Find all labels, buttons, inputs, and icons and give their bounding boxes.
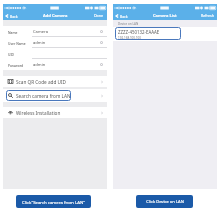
button[interactable]: Click"Search camera from LAN"	[16, 195, 91, 208]
staticText: Search camera from LAN	[16, 93, 71, 99]
button[interactable]: Click Device on LAN	[136, 195, 193, 208]
button[interactable]: Scan QR Code add UID	[3, 76, 107, 87]
staticText: Back	[10, 14, 18, 19]
other: Back	[115, 13, 119, 19]
other: Clear	[100, 41, 103, 44]
staticText: Camera List	[153, 13, 177, 19]
staticText: Camera	[33, 29, 48, 35]
other: Clear	[100, 63, 103, 66]
button[interactable]: ZZZZ-450132-EAAAE	[113, 27, 217, 41]
staticText: Click Device on LAN	[146, 199, 184, 205]
staticText: User Name	[8, 41, 26, 45]
button[interactable]: Refresh	[201, 13, 214, 18]
button[interactable]: Wireless Installation	[3, 107, 107, 118]
staticText: Click"Search camera from LAN"	[22, 199, 85, 205]
button[interactable]: Search camera from LAN	[3, 89, 107, 102]
staticText: 192.168.100.100	[118, 36, 142, 40]
staticText: Add Camera	[43, 13, 68, 19]
button[interactable]: Back	[115, 13, 128, 19]
staticText: UID	[8, 52, 15, 56]
staticText: admin	[33, 62, 46, 68]
staticText: ZZZZ-450132-EAAAE	[118, 29, 160, 35]
staticText: Wireless Installation	[16, 110, 61, 116]
button[interactable]: Back	[5, 13, 18, 19]
staticText: Name	[8, 30, 18, 34]
other: Clear	[100, 30, 103, 33]
staticText: Scan QR Code add UID	[16, 79, 66, 85]
staticText: admin	[33, 40, 46, 46]
staticText: Back	[120, 14, 128, 19]
staticText: Device on LAN	[118, 22, 139, 26]
button[interactable]: Done	[94, 13, 104, 18]
other: Back	[5, 13, 9, 19]
staticText: Password	[8, 63, 24, 67]
